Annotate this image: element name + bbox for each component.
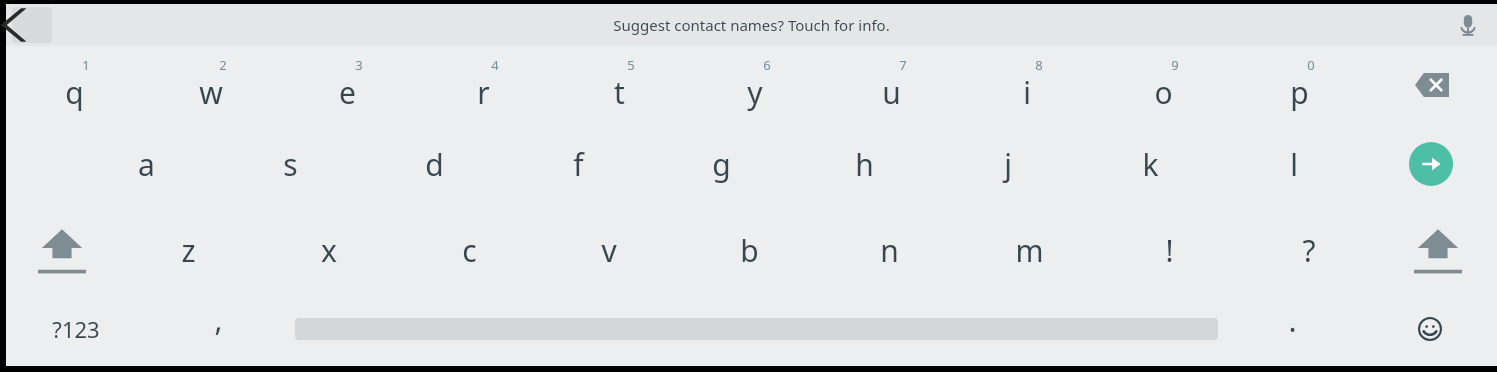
button[interactable]: e: [279, 46, 415, 124]
button[interactable]: n: [819, 209, 959, 291]
staticText: q: [65, 72, 84, 113]
button[interactable]: z: [118, 209, 259, 291]
staticText: n: [880, 230, 899, 271]
staticText: ?123: [52, 314, 100, 344]
staticText: 0: [1307, 56, 1315, 74]
staticText: ,: [214, 299, 223, 340]
staticText: w: [199, 72, 223, 113]
staticText: a: [138, 144, 155, 185]
staticText: !: [1165, 230, 1174, 271]
button[interactable]: j: [936, 124, 1079, 204]
button[interactable]: p: [1231, 46, 1367, 124]
button[interactable]: d: [362, 124, 506, 204]
button[interactable]: Back: [0, 4, 34, 46]
staticText: p: [1290, 72, 1309, 113]
staticText: 6: [763, 56, 771, 74]
staticText: e: [339, 72, 356, 113]
button[interactable]: q: [6, 46, 143, 124]
staticText: u: [882, 72, 901, 113]
staticText: s: [283, 144, 298, 185]
staticText: d: [425, 144, 444, 185]
button[interactable]: l: [1222, 124, 1365, 204]
staticText: z: [181, 230, 196, 271]
button[interactable]: x: [259, 209, 399, 291]
staticText: f: [573, 144, 584, 185]
button[interactable]: c: [399, 209, 539, 291]
staticText: x: [321, 230, 337, 271]
staticText: t: [614, 72, 625, 113]
staticText: o: [1154, 72, 1173, 113]
staticText: h: [855, 144, 874, 185]
button[interactable]: a: [74, 124, 218, 204]
staticText: 8: [1035, 56, 1043, 74]
button[interactable]: t: [551, 46, 687, 124]
staticText: k: [1142, 144, 1159, 185]
staticText: 3: [355, 56, 363, 74]
button[interactable]: r: [415, 46, 551, 124]
staticText: .: [1288, 300, 1297, 341]
staticText: g: [712, 144, 731, 185]
button[interactable]: Voice input: [1439, 4, 1497, 46]
button[interactable]: g: [650, 124, 793, 204]
staticText: r: [477, 72, 490, 113]
button[interactable]: Space: [291, 291, 1222, 366]
staticText: i: [1023, 72, 1031, 113]
staticText: b: [740, 230, 759, 271]
staticText: 7: [899, 56, 907, 74]
button[interactable]: m: [959, 209, 1099, 291]
staticText: j: [1004, 144, 1012, 185]
button[interactable]: ,: [146, 291, 291, 366]
button[interactable]: w: [143, 46, 279, 124]
button[interactable]: Shift: [6, 209, 118, 291]
button[interactable]: o: [1095, 46, 1231, 124]
button[interactable]: !: [1099, 209, 1239, 291]
staticText: 1: [82, 56, 90, 74]
button[interactable]: i: [959, 46, 1095, 124]
button[interactable]: Shift: [1379, 209, 1497, 291]
button[interactable]: Emoji: [1362, 291, 1497, 366]
staticText: y: [747, 72, 763, 113]
button[interactable]: Enter: [1365, 124, 1497, 204]
staticText: Suggest contact names? Touch for info.: [613, 15, 890, 35]
button[interactable]: h: [793, 124, 936, 204]
button[interactable]: f: [506, 124, 650, 204]
button[interactable]: Suggest contact names? Touch for info.: [6, 4, 1497, 46]
button[interactable]: k: [1079, 124, 1222, 204]
staticText: 5: [627, 56, 635, 74]
button[interactable]: ?123: [6, 291, 146, 366]
staticText: c: [462, 230, 477, 271]
button[interactable]: v: [539, 209, 679, 291]
staticText: m: [1015, 230, 1044, 271]
button[interactable]: Backspace: [1367, 46, 1497, 124]
button[interactable]: y: [687, 46, 823, 124]
staticText: 2: [219, 56, 227, 74]
button[interactable]: ?: [1239, 209, 1379, 291]
staticText: 9: [1171, 56, 1179, 74]
button[interactable]: s: [218, 124, 362, 204]
button[interactable]: .: [1222, 291, 1362, 366]
button[interactable]: b: [679, 209, 819, 291]
staticText: v: [601, 230, 617, 271]
button[interactable]: u: [823, 46, 959, 124]
staticText: l: [1290, 144, 1298, 185]
staticText: ?: [1302, 230, 1316, 271]
staticText: 4: [491, 56, 499, 74]
